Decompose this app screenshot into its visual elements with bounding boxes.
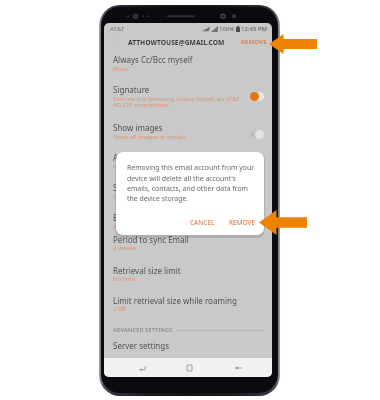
staticText: Server settings [113, 340, 170, 351]
staticText: Email sync schedule [113, 212, 188, 223]
staticText: Always Cc/Bcc myself [113, 54, 193, 65]
staticText: 12:45 PM [241, 25, 268, 33]
staticText: CANCEL [190, 218, 215, 227]
staticText: 2 KB [113, 305, 126, 313]
button[interactable] [104, 261, 272, 287]
staticText: Auto download attachments [113, 152, 220, 163]
button[interactable]: Toggle on [250, 92, 264, 101]
staticText: ADVANCED SETTINGS [113, 326, 173, 333]
button[interactable]: REMOVE [241, 34, 267, 50]
staticText: ON [113, 193, 123, 201]
button[interactable] [104, 336, 272, 362]
button[interactable]: Recents [126, 358, 158, 377]
button[interactable] [104, 178, 272, 204]
other: Annotation arrow [259, 210, 307, 235]
staticText: Removing this email account from your de… [127, 163, 256, 203]
staticText: No limit [113, 275, 136, 283]
staticText: Auto [113, 223, 127, 231]
staticText: REMOVE [229, 218, 256, 227]
button[interactable]: CANCEL [185, 215, 220, 230]
button[interactable] [104, 80, 272, 112]
staticText: Show all images in emails [113, 133, 186, 141]
staticText: ATTHOWTOUSE@GMAIL.COM [128, 38, 225, 47]
button[interactable] [104, 50, 272, 76]
staticText: AT&T [110, 25, 125, 33]
staticText: None [113, 65, 129, 73]
staticText: Signature [113, 84, 150, 95]
button[interactable] [104, 118, 272, 144]
button[interactable] [104, 148, 272, 174]
button[interactable] [104, 208, 272, 234]
staticText: Sent via the Samsung Galaxy Note8, an AT… [113, 95, 240, 103]
staticText: 100% [219, 25, 235, 33]
staticText: Retrieval size limit [113, 265, 181, 276]
button[interactable]: Home [173, 358, 205, 377]
staticText: Show images [113, 122, 163, 133]
button[interactable] [104, 230, 272, 256]
staticText: Sync Email [113, 182, 153, 193]
staticText: 4G LTE smartphone [113, 101, 169, 109]
staticText: REMOVE [241, 38, 267, 46]
button[interactable]: Back [222, 358, 254, 377]
staticText: Period to sync Email [113, 234, 189, 245]
button[interactable]: Toggle off [250, 130, 264, 139]
staticText: Limit retrieval size while roaming [113, 295, 237, 306]
button[interactable] [104, 291, 272, 317]
other: Annotation arrow [269, 34, 317, 54]
button[interactable]: REMOVE [224, 215, 261, 230]
staticText: When connected to Wi-Fi [113, 163, 184, 171]
button[interactable]: Toggle off [250, 160, 264, 169]
button[interactable]: Back [108, 34, 122, 50]
staticText: 2 weeks [113, 244, 136, 252]
